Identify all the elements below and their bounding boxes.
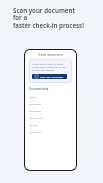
staticText: Travel documents	[38, 53, 63, 57]
staticText: Date of birth	[29, 116, 44, 119]
staticText: First name	[29, 102, 41, 105]
staticText: Document data	[29, 87, 49, 91]
staticText: Nationality	[29, 130, 42, 133]
staticText: Gender	[29, 123, 38, 126]
staticText: Scan your document	[40, 75, 64, 78]
staticText: Scan your document for a faster check-in…	[13, 6, 85, 30]
staticText: Name	[29, 95, 36, 98]
staticText: Last name	[29, 109, 41, 112]
staticText: Lorem ipsum dolor sit amet, consectetur …	[32, 62, 69, 71]
button[interactable]: Scan your document	[32, 74, 67, 79]
